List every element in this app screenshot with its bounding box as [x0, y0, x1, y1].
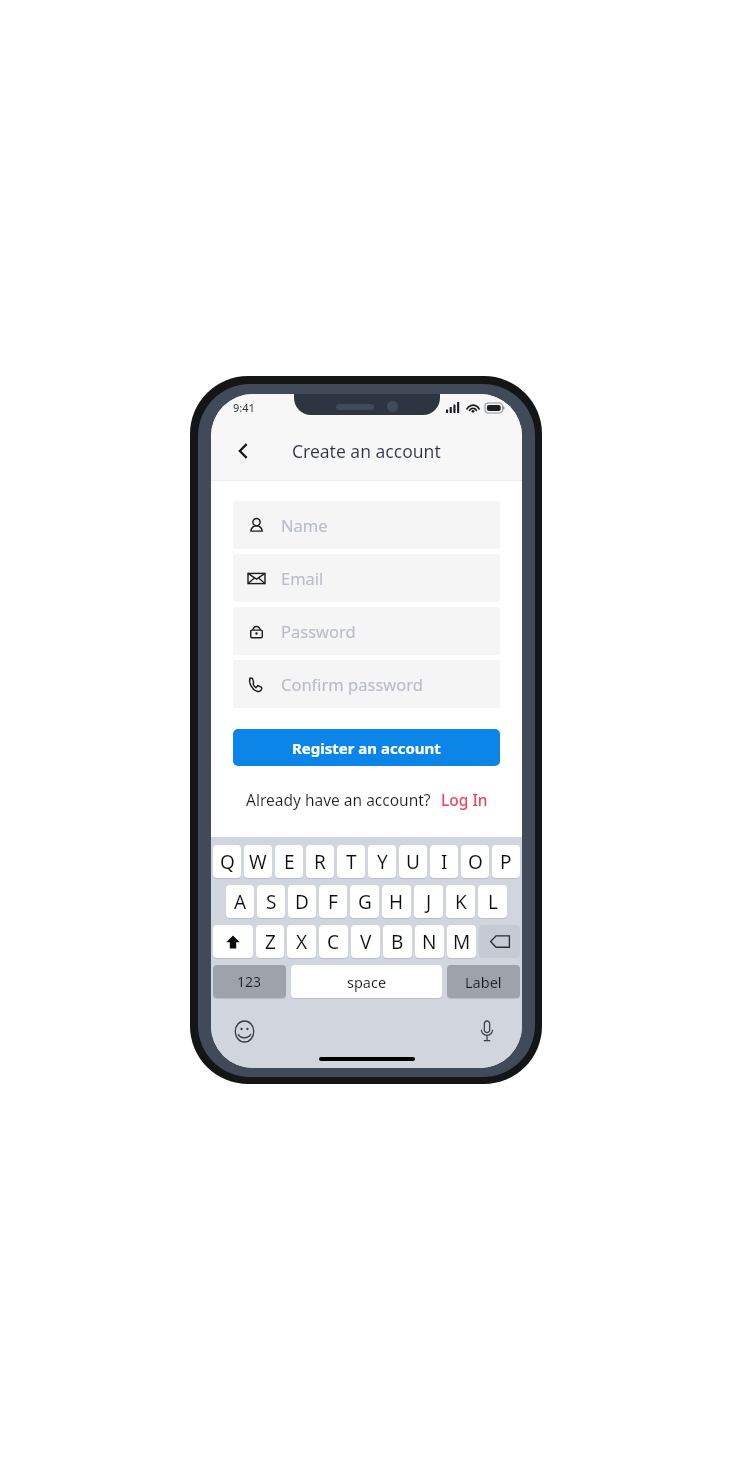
staticText: V — [360, 929, 372, 955]
button[interactable]: D — [288, 885, 316, 918]
staticText: W — [249, 849, 267, 875]
button[interactable]: T — [337, 845, 365, 878]
staticText: G — [358, 889, 372, 915]
staticText: Q — [220, 849, 235, 875]
button[interactable]: Y — [368, 845, 396, 878]
staticText: S — [266, 889, 277, 915]
button[interactable]: N — [415, 925, 444, 958]
button[interactable]: Voice input — [474, 1018, 500, 1044]
staticText: X — [296, 929, 308, 955]
staticText: Register an account — [292, 738, 441, 758]
staticText: I — [441, 849, 448, 875]
button[interactable]: Q — [213, 845, 241, 878]
button[interactable]: Name — [233, 501, 500, 549]
staticText: N — [422, 929, 437, 955]
button[interactable]: W — [244, 845, 272, 878]
staticText: A — [234, 889, 247, 915]
button[interactable]: Backspace — [479, 925, 520, 958]
button[interactable]: O — [461, 845, 489, 878]
button[interactable]: R — [306, 845, 334, 878]
button[interactable]: K — [446, 885, 475, 918]
button[interactable]: Password — [233, 607, 500, 655]
button[interactable]: G — [350, 885, 379, 918]
staticText: Log In — [441, 789, 488, 810]
staticText: Email — [281, 567, 324, 589]
staticText: Already have an account? — [246, 789, 431, 810]
staticText: Create an account — [292, 439, 441, 463]
button[interactable]: M — [447, 925, 476, 958]
button[interactable]: S — [257, 885, 285, 918]
staticText: 9:41 — [233, 400, 255, 415]
button[interactable]: Z — [256, 925, 284, 958]
staticText: Y — [377, 849, 388, 875]
button[interactable]: F — [319, 885, 347, 918]
staticText: T — [346, 849, 357, 875]
button[interactable]: Emoji — [231, 1018, 257, 1044]
button[interactable]: Shift — [213, 925, 253, 958]
button[interactable]: L — [478, 885, 507, 918]
staticText: Confirm password — [281, 673, 423, 695]
staticText: E — [284, 849, 295, 875]
button[interactable]: V — [351, 925, 380, 958]
staticText: C — [327, 929, 340, 955]
staticText: D — [295, 889, 309, 915]
staticText: M — [453, 929, 471, 955]
staticText: K — [455, 889, 467, 915]
button[interactable]: U — [399, 845, 427, 878]
staticText: U — [406, 849, 420, 875]
button[interactable]: C — [319, 925, 348, 958]
button[interactable]: J — [414, 885, 443, 918]
button[interactable]: Confirm password — [233, 660, 500, 708]
button[interactable]: Register an account — [233, 729, 500, 766]
staticText: H — [389, 889, 404, 915]
staticText: B — [391, 929, 404, 955]
button[interactable]: E — [275, 845, 303, 878]
button[interactable]: A — [226, 885, 254, 918]
staticText: L — [488, 889, 498, 915]
staticText: Name — [281, 514, 328, 536]
staticText: Label — [465, 972, 502, 992]
button[interactable]: H — [382, 885, 411, 918]
staticText: 123 — [237, 972, 262, 991]
button[interactable]: P — [492, 845, 520, 878]
staticText: R — [314, 849, 326, 875]
staticText: O — [468, 849, 483, 875]
button[interactable]: B — [383, 925, 412, 958]
button[interactable]: Label — [447, 965, 520, 998]
staticText: J — [426, 889, 432, 915]
button[interactable]: I — [430, 845, 458, 878]
button[interactable]: Email — [233, 554, 500, 602]
button[interactable]: Log In — [441, 789, 488, 810]
staticText: Password — [281, 620, 356, 642]
staticText: space — [347, 972, 387, 992]
staticText: P — [500, 849, 512, 875]
button[interactable]: space — [291, 965, 442, 998]
button[interactable]: Back — [223, 431, 263, 471]
staticText: Z — [265, 929, 276, 955]
button[interactable]: X — [287, 925, 316, 958]
button[interactable]: 123 — [213, 965, 286, 998]
staticText: F — [328, 889, 338, 915]
